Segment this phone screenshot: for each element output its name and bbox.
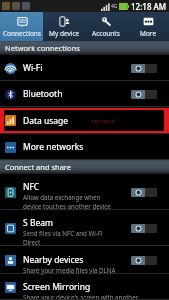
staticText: Bluetooth — [23, 88, 63, 100]
staticText: Network connections — [5, 43, 80, 53]
button[interactable]: Toggle — [131, 224, 157, 233]
staticText: tap here — [91, 117, 115, 125]
staticText: Nearby devices — [23, 254, 84, 266]
staticText: Accounts — [92, 29, 120, 38]
button[interactable]: Screen Mirroring — [0, 274, 169, 300]
staticText: Connect and share — [5, 162, 72, 172]
button[interactable]: NFC — [0, 174, 169, 210]
staticText: S Beam — [23, 217, 53, 229]
staticText: 12:18 AM — [131, 1, 167, 12]
staticText: 4G — [111, 3, 118, 10]
staticText: Send files via NFC and Wi-Fi Direct — [23, 229, 103, 246]
button[interactable]: Connections — [0, 12, 43, 41]
button[interactable]: Toggle — [131, 64, 157, 73]
button[interactable]: More networks — [0, 134, 169, 160]
staticText: NFC — [23, 181, 40, 193]
button[interactable]: Bluetooth — [0, 81, 169, 107]
button[interactable]: Data usage — [0, 107, 169, 134]
staticText: My device — [49, 29, 80, 38]
button[interactable]: Toggle — [131, 188, 157, 197]
staticText: Share your media files via DLNA — [23, 266, 116, 274]
button[interactable]: Nearby devices — [0, 246, 169, 274]
staticText: Wi-Fi — [23, 62, 43, 74]
button[interactable]: More — [127, 12, 169, 41]
staticText: Screen Mirroring — [23, 281, 91, 293]
staticText: Data usage — [23, 115, 69, 127]
staticText: Connections — [3, 29, 41, 38]
staticText: More networks — [23, 141, 84, 153]
button[interactable]: Toggle — [131, 90, 157, 99]
staticText: More — [140, 29, 157, 38]
button[interactable]: Toggle — [131, 256, 157, 265]
button[interactable]: My device — [43, 12, 85, 41]
button[interactable]: Wi-Fi — [0, 55, 169, 81]
button[interactable]: S Beam — [0, 210, 169, 246]
button[interactable]: Accounts — [85, 12, 127, 41]
staticText: Allow data exchange when device touches … — [23, 193, 111, 210]
staticText: Share your device's screen with another — [23, 293, 139, 300]
